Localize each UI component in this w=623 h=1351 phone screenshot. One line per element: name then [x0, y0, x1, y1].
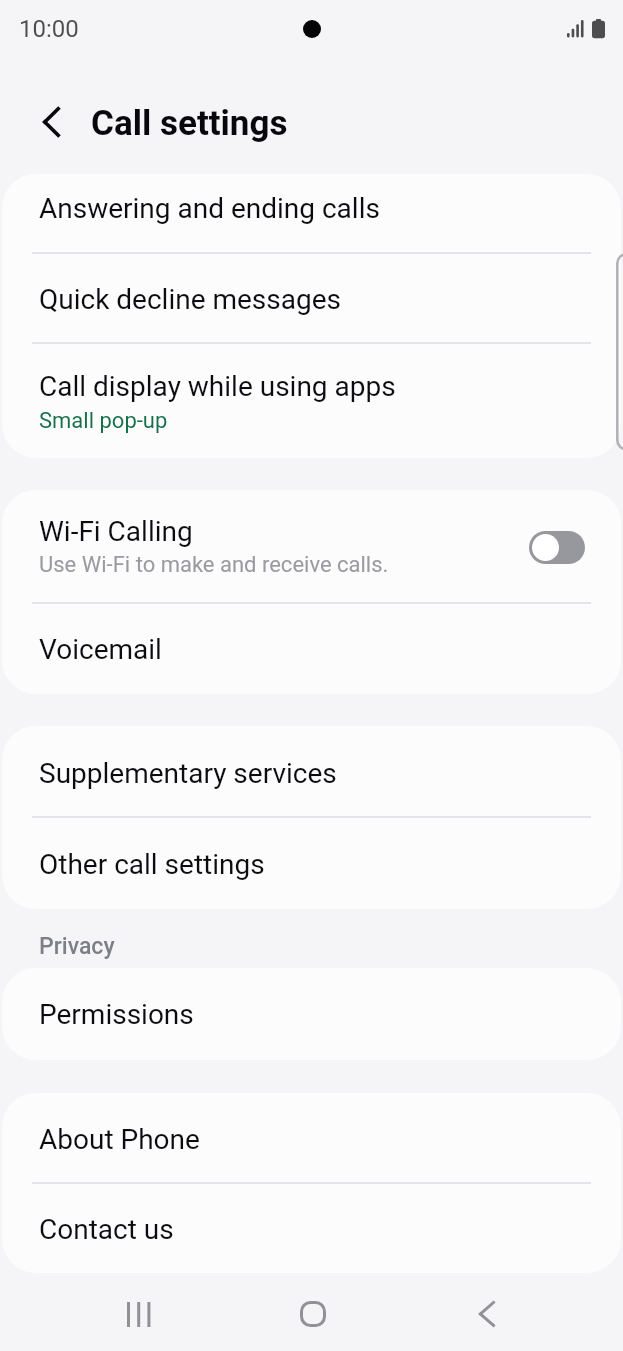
button[interactable]: About Phone: [2, 1093, 621, 1184]
button[interactable]: Navigate up: [29, 100, 73, 144]
staticText: Quick decline messages: [39, 283, 342, 316]
staticText: Wi-Fi Calling: [39, 515, 193, 548]
staticText: Call display while using apps: [39, 370, 396, 403]
button[interactable]: Contact us: [2, 1184, 621, 1273]
button[interactable]: Wi-Fi Calling: [2, 490, 621, 604]
button[interactable]: Other call settings: [2, 818, 621, 909]
button[interactable]: Recent apps: [104, 1279, 174, 1349]
button[interactable]: Quick decline messages: [2, 254, 621, 344]
button[interactable]: Call display while using apps: [2, 344, 621, 457]
staticText: Use Wi-Fi to make and receive calls.: [39, 552, 389, 578]
button[interactable]: Permissions: [2, 968, 621, 1060]
staticText: Call settings: [91, 103, 288, 144]
button[interactable]: Wi-Fi Calling switch, off: [529, 531, 585, 564]
staticText: Supplementary services: [39, 757, 337, 790]
staticText: Contact us: [39, 1213, 174, 1246]
staticText: Answering and ending calls: [39, 192, 380, 225]
staticText: About Phone: [39, 1123, 200, 1156]
button[interactable]: Voicemail: [2, 604, 621, 694]
staticText: Voicemail: [39, 633, 162, 666]
staticText: Privacy: [39, 933, 115, 960]
button[interactable]: Back: [452, 1279, 522, 1349]
button[interactable]: Home: [278, 1279, 348, 1349]
staticText: 10:00: [19, 15, 79, 43]
staticText: Other call settings: [39, 848, 265, 881]
staticText: Small pop-up: [39, 408, 168, 434]
button[interactable]: Supplementary services: [2, 726, 621, 818]
button[interactable]: Answering and ending calls: [2, 174, 621, 254]
staticText: Permissions: [39, 998, 194, 1031]
